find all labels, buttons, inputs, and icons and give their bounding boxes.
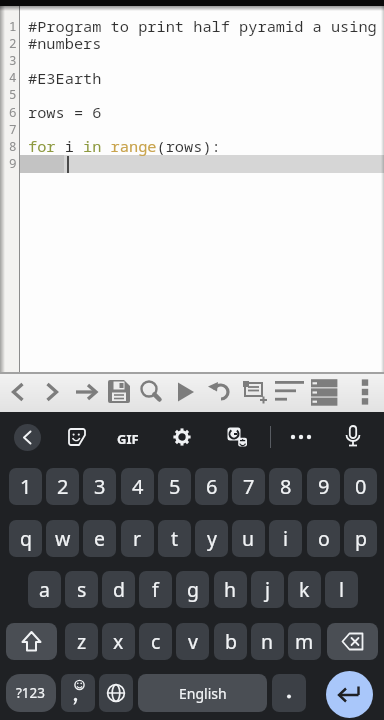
staticText: z [77,628,87,655]
staticText: 6 [206,473,218,500]
button[interactable]: z [65,623,98,660]
staticText: r [133,525,142,552]
button[interactable] [348,375,382,409]
button[interactable]: h [214,571,247,608]
button[interactable]: q [9,520,42,557]
button[interactable]: d [102,571,135,608]
staticText: 7 [9,121,17,138]
button[interactable]: k [288,571,321,608]
button[interactable] [6,623,57,660]
staticText: f [152,576,159,603]
staticText: English [179,684,227,703]
staticText: d [113,576,125,603]
staticText: x [113,628,124,655]
staticText: e [94,525,105,552]
staticText: i [283,525,289,552]
button[interactable]: b [214,623,247,660]
staticText: 5 [9,86,17,103]
button[interactable]: u [232,520,265,557]
staticText: p [355,525,367,552]
button[interactable]: 3 [83,468,116,505]
button[interactable]: y [195,520,228,557]
staticText: u [242,525,255,552]
button[interactable]: x [102,623,135,660]
button[interactable]: m [288,623,321,660]
button[interactable]: c [139,623,172,660]
button[interactable]: a [28,571,61,608]
button[interactable]: t [158,520,191,557]
staticText: q [20,525,32,552]
staticText: 0 [355,473,367,500]
button[interactable] [326,671,373,718]
button[interactable] [35,375,69,409]
button[interactable]: f [139,571,172,608]
button[interactable] [237,375,271,409]
staticText: ?123 [16,684,46,702]
button[interactable]: e [83,520,116,557]
button[interactable] [102,375,136,409]
staticText: 3 [9,52,17,69]
button[interactable] [14,424,41,451]
staticText: 2 [9,35,17,52]
staticText: 8 [280,473,292,500]
button[interactable] [1,375,35,409]
button[interactable]: v [176,623,209,660]
staticText: GIF [117,430,139,448]
button[interactable]: s [65,571,98,608]
staticText: #Program to print half pyramid a using [28,16,377,37]
button[interactable] [203,375,237,409]
button[interactable] [336,420,370,454]
button[interactable]: 6 [195,468,228,505]
staticText: j [265,576,271,603]
button[interactable] [271,375,305,409]
button[interactable] [284,420,318,454]
button[interactable] [61,674,95,712]
button[interactable]: p [344,520,377,557]
staticText: h [224,576,237,603]
button[interactable]: 9 [307,468,340,505]
button[interactable]: 1 [9,468,42,505]
button[interactable]: 2 [46,468,79,505]
button[interactable]: ?123 [6,674,56,712]
staticText: 3 [94,473,106,500]
button[interactable]: 4 [121,468,154,505]
staticText: k [299,576,310,603]
staticText: 1 [20,473,32,500]
staticText: t [171,525,179,552]
button[interactable]: g [176,571,209,608]
staticText: 9 [318,473,330,500]
button[interactable]: l [325,571,358,608]
button[interactable]: 5 [158,468,191,505]
button[interactable]: o [307,520,340,557]
staticText: b [225,628,237,655]
button[interactable] [327,623,378,660]
staticText: 1 [9,18,17,35]
staticText: v [188,628,198,655]
button[interactable] [134,375,168,409]
button[interactable] [99,674,133,712]
button[interactable] [60,420,94,454]
staticText: o [318,525,330,552]
button[interactable]: r [121,520,154,557]
button[interactable]: English [138,674,267,712]
button[interactable] [168,375,202,409]
button[interactable] [272,674,306,712]
staticText: w [55,525,71,552]
button[interactable] [69,375,103,409]
button[interactable] [165,420,199,454]
button[interactable]: j [251,571,284,608]
button[interactable]: i [269,520,302,557]
staticText: n [261,628,274,655]
button[interactable]: w [46,520,79,557]
button[interactable]: 7 [232,468,265,505]
button[interactable]: 0 [344,468,377,505]
staticText: s [77,576,87,603]
button[interactable]: n [251,623,284,660]
button[interactable]: 8 [269,468,302,505]
button[interactable] [307,375,341,409]
staticText: 6 [9,104,17,121]
button[interactable] [220,420,254,454]
staticText: c [151,628,161,655]
staticText: g [187,576,199,603]
staticText: l [339,576,345,603]
